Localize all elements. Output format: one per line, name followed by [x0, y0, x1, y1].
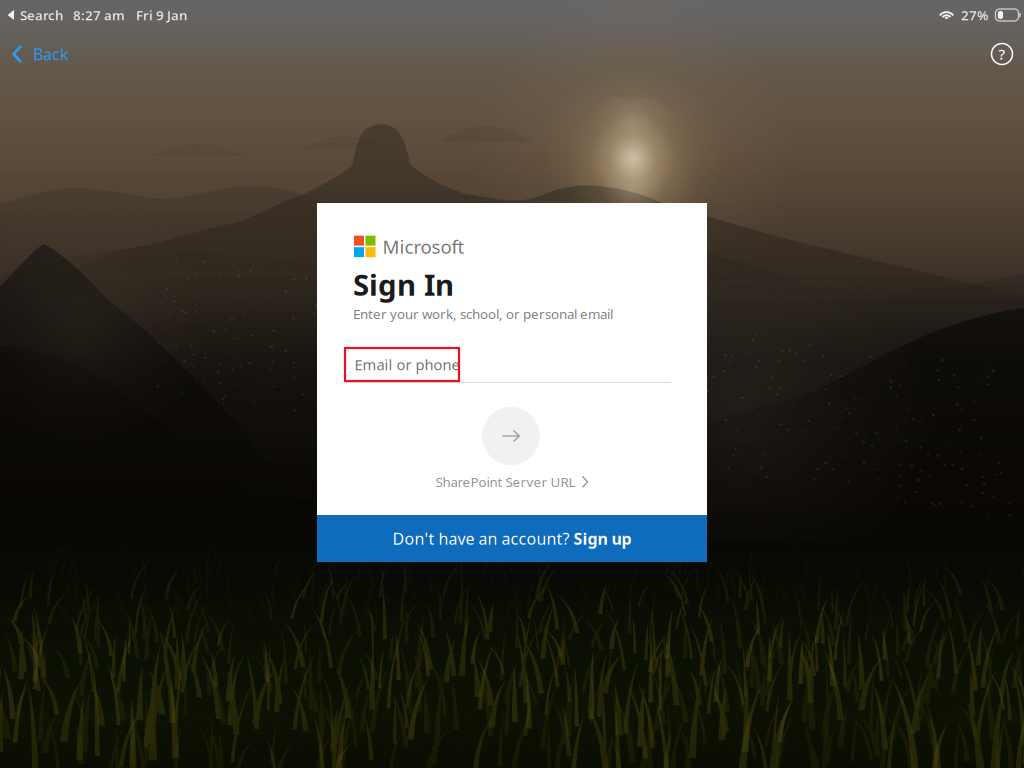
button[interactable]: Back — [5, 35, 76, 73]
button[interactable]: SharePoint Server URL — [317, 469, 707, 495]
staticText: Sign In — [353, 265, 454, 304]
button[interactable]: Help — [985, 37, 1019, 71]
staticText: Back — [33, 43, 69, 65]
button[interactable]: Continue — [482, 407, 540, 465]
staticText: Fri 9 Jan — [136, 6, 187, 24]
button[interactable]: Email or phone — [345, 348, 459, 381]
button[interactable]: Back to Search — [7, 4, 63, 26]
staticText: Sign up — [573, 528, 631, 549]
button[interactable]: Don't have an account? — [317, 515, 707, 562]
staticText: SharePoint Server URL — [435, 473, 575, 491]
staticText: Search — [20, 6, 63, 24]
staticText: Enter your work, school, or personal ema… — [353, 305, 613, 323]
staticText: ? — [998, 44, 1005, 64]
staticText: 8:27 am — [73, 6, 125, 24]
staticText: Email or phone — [354, 355, 459, 374]
staticText: Don't have an account? — [392, 528, 573, 549]
staticText: 27% — [961, 6, 988, 24]
staticText: Microsoft — [382, 234, 464, 259]
